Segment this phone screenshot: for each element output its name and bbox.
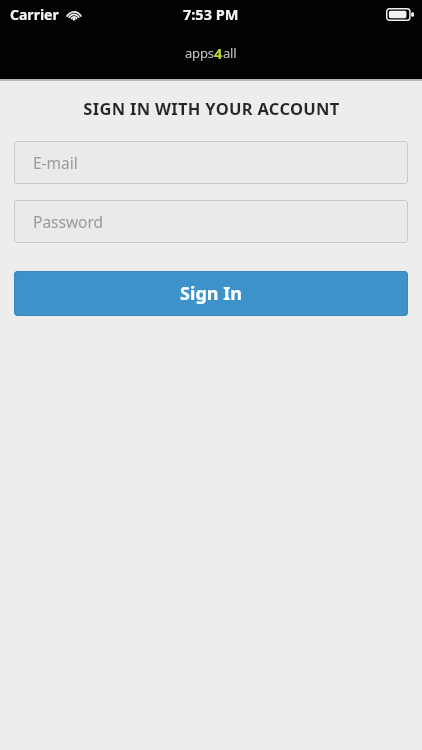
button[interactable]: Sign In <box>14 271 408 316</box>
button[interactable]: Password <box>14 200 408 243</box>
staticText: SIGN IN WITH YOUR ACCOUNT <box>83 97 340 119</box>
staticText: all <box>223 44 237 62</box>
staticText: 7:53 PM <box>183 4 239 24</box>
staticText: Password <box>33 211 104 232</box>
staticText: E-mail <box>33 152 78 173</box>
staticText: apps <box>185 44 214 62</box>
staticText: 4 <box>214 43 223 63</box>
staticText: Sign In <box>180 281 242 306</box>
staticText: Carrier <box>10 5 59 24</box>
button[interactable]: E-mail <box>14 141 408 184</box>
